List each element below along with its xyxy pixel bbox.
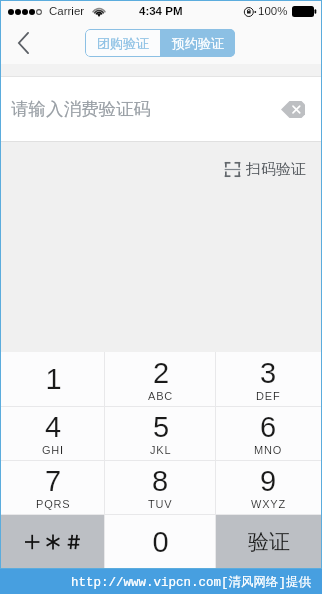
staticText: 0 — [152, 526, 169, 558]
staticText: 9 — [260, 465, 277, 497]
button[interactable]: 预约验证 — [160, 29, 235, 57]
staticText: 5 — [153, 411, 170, 443]
staticText: MNO — [254, 444, 283, 456]
staticText: 2 — [153, 357, 170, 389]
staticText: 3 — [260, 357, 277, 389]
button[interactable]: 9 — [216, 461, 321, 514]
button[interactable]: 1 — [1, 352, 105, 406]
staticText: WXYZ — [251, 498, 286, 510]
staticText: 验证 — [248, 529, 290, 555]
staticText: 4 — [45, 411, 62, 443]
button[interactable]: 3 — [216, 352, 321, 406]
staticText: 100% — [258, 5, 288, 18]
staticText: 4:34 PM — [139, 5, 183, 18]
staticText: 请输入消费验证码 — [11, 98, 151, 120]
button[interactable]: 4 — [1, 407, 105, 460]
staticText: PQRS — [36, 498, 71, 510]
button[interactable]: 扫码验证 — [225, 160, 306, 179]
staticText: Carrier — [49, 5, 85, 18]
staticText: 预约验证 — [172, 35, 224, 51]
button[interactable]: 6 — [216, 407, 321, 460]
staticText: DEF — [256, 390, 281, 402]
button[interactable]: 5 — [105, 407, 216, 460]
staticText: GHI — [42, 444, 64, 456]
button[interactable]: 0 — [105, 515, 216, 568]
staticText: http://www.vipcn.com[清风网络]提供 — [71, 574, 312, 590]
button[interactable]: 团购验证 — [85, 29, 160, 57]
button[interactable]: 8 — [105, 461, 216, 514]
button[interactable]: 7 — [1, 461, 105, 514]
button[interactable]: 2 — [105, 352, 216, 406]
button[interactable]: Back — [1, 21, 45, 64]
button[interactable]: 验证 — [216, 515, 321, 568]
staticText: 1 — [45, 363, 62, 395]
button[interactable]: Clear — [281, 101, 305, 118]
staticText: 8 — [152, 465, 169, 497]
staticText: ABC — [148, 390, 174, 402]
staticText: JKL — [150, 444, 172, 456]
staticText: 团购验证 — [97, 35, 149, 51]
staticText: 扫码验证 — [246, 160, 306, 179]
staticText: 7 — [45, 465, 62, 497]
staticText: 6 — [260, 411, 277, 443]
button[interactable]: plus star hash — [1, 515, 105, 568]
staticText: TUV — [148, 498, 173, 510]
